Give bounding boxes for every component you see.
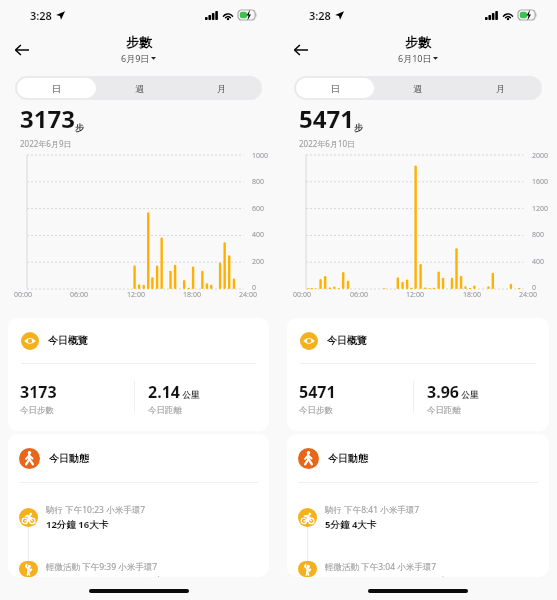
staticText: 公里 <box>459 389 479 401</box>
staticText: 24:00 <box>239 290 257 300</box>
button[interactable]: 輕微活動 下午9:39 小米手環7 <box>19 561 269 577</box>
button[interactable]: 日 <box>296 78 374 98</box>
button[interactable]: 週 <box>378 78 457 98</box>
button[interactable]: 月 <box>182 78 260 98</box>
staticText: 今日動態 <box>328 452 368 465</box>
staticText: 騎行 下午10:23 小米手環7 <box>46 504 146 516</box>
button[interactable]: 6月10日 <box>398 52 438 64</box>
staticText: 400 <box>252 230 265 240</box>
staticText: 月 <box>496 83 505 94</box>
staticText: 公里 <box>180 389 200 401</box>
staticText: 0 <box>252 283 257 293</box>
staticText: 5471 <box>299 381 336 403</box>
staticText: 步數 <box>405 34 431 50</box>
staticText: 00:00 <box>14 290 32 300</box>
staticText: 1600 <box>532 177 549 187</box>
button[interactable]: 日 <box>17 78 96 98</box>
staticText: 輕微活動 下午3:04 小米手環7 <box>325 561 437 573</box>
staticText: 今日距離 <box>427 405 461 416</box>
staticText: 00:00 <box>293 290 311 300</box>
staticText: 6月9日 <box>121 52 150 64</box>
staticText: 步數 <box>126 34 152 50</box>
staticText: 800 <box>532 230 545 240</box>
staticText: 步 <box>75 122 84 133</box>
staticText: 06:00 <box>350 290 368 300</box>
staticText: 1000 <box>252 151 269 161</box>
staticText: 18:00 <box>463 290 481 300</box>
button[interactable]: 月 <box>461 78 540 98</box>
staticText: 日 <box>331 83 340 94</box>
staticText: 2022年6月10日 <box>299 138 356 148</box>
staticText: 1200 <box>532 204 549 214</box>
button[interactable]: 騎行 下午10:23 小米手環7 <box>19 504 269 531</box>
staticText: 今日概覽 <box>48 334 88 347</box>
staticText: 18:00 <box>183 290 201 300</box>
staticText: 輕微活動 下午9:39 小米手環7 <box>46 561 158 573</box>
staticText: 2.14 <box>148 381 180 403</box>
staticText: 3173 <box>20 381 57 403</box>
staticText: 今日步數 <box>299 405 333 416</box>
staticText: 週 <box>135 83 144 94</box>
staticText: 12:00 <box>406 290 424 300</box>
button[interactable]: 今日概覽 <box>21 318 269 363</box>
button[interactable]: Back <box>8 36 36 64</box>
staticText: 3:28 <box>30 8 52 23</box>
staticText: 今日概覽 <box>327 334 367 347</box>
staticText: 12:00 <box>127 290 145 300</box>
button[interactable]: 今日動態 <box>298 434 549 482</box>
staticText: 9分鐘 188步 125公尺 5大卡 <box>46 575 164 577</box>
button[interactable]: 週 <box>100 78 178 98</box>
staticText: 12分鐘 16大卡 <box>46 518 109 531</box>
staticText: 今日距離 <box>148 405 182 416</box>
staticText: 步 <box>354 122 363 133</box>
button[interactable]: 6月9日 <box>121 52 156 64</box>
staticText: 5471 <box>299 102 354 135</box>
staticText: 200 <box>252 257 265 267</box>
staticText: 日 <box>52 83 61 94</box>
staticText: 0 <box>532 283 537 293</box>
staticText: 今日步數 <box>20 405 54 416</box>
staticText: 3:28 <box>309 8 331 23</box>
button[interactable]: 騎行 下午8:41 小米手環7 <box>298 504 549 531</box>
button[interactable]: Back <box>287 36 315 64</box>
button[interactable]: 今日動態 <box>19 434 269 482</box>
staticText: 600 <box>252 204 265 214</box>
button[interactable]: 今日概覽 <box>300 318 549 363</box>
staticText: 24:00 <box>519 290 537 300</box>
staticText: 週 <box>413 83 422 94</box>
staticText: 2000 <box>532 151 549 161</box>
staticText: 3.96 <box>427 381 459 403</box>
staticText: 800 <box>252 177 265 187</box>
staticText: 今日動態 <box>49 452 89 465</box>
staticText: 2022年6月9日 <box>20 138 72 148</box>
staticText: 月 <box>217 83 226 94</box>
staticText: 5分鐘 4大卡 <box>325 518 377 531</box>
button[interactable]: 輕微活動 下午3:04 小米手環7 <box>298 561 549 577</box>
staticText: 騎行 下午8:41 小米手環7 <box>325 504 420 516</box>
staticText: 06:00 <box>70 290 88 300</box>
staticText: 6月10日 <box>398 52 432 64</box>
staticText: 3173 <box>20 102 75 135</box>
staticText: 400 <box>532 257 545 267</box>
staticText: 21分鐘 172步 115公尺 6大卡 <box>325 575 448 577</box>
